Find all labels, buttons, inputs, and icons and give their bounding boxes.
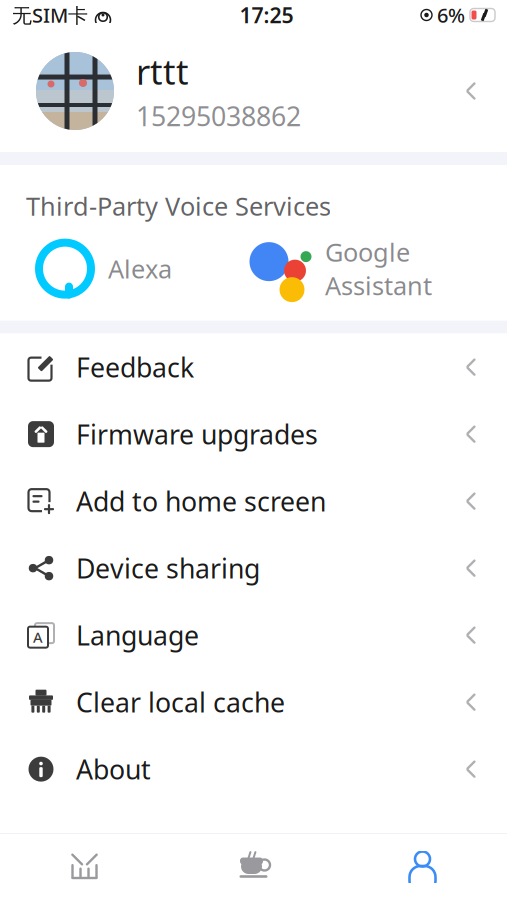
staticText: Clear local cache	[76, 684, 285, 720]
button[interactable]: Clear local cache	[0, 669, 507, 736]
staticText: rttt	[136, 48, 189, 94]
staticText: 无SIM卡	[12, 2, 88, 28]
button[interactable]: A	[0, 602, 507, 669]
button[interactable]: Discover	[169, 834, 338, 900]
staticText: 15295038862	[136, 98, 301, 134]
staticText: 6%	[437, 2, 465, 28]
button[interactable]: Profile	[338, 834, 507, 900]
button[interactable]: Alexa	[0, 231, 249, 307]
button[interactable]: Add to home screen	[0, 468, 507, 535]
button[interactable]: Google Assistant	[249, 231, 469, 307]
staticText: Add to home screen	[76, 483, 326, 519]
button[interactable]: rttt	[0, 30, 507, 152]
staticText: Language	[76, 617, 199, 653]
staticText: Google Assistant	[325, 235, 432, 302]
staticText: Alexa	[108, 252, 172, 285]
button[interactable]: Device sharing	[0, 535, 507, 602]
button[interactable]: Feedback	[0, 334, 507, 401]
button[interactable]: Home	[0, 834, 169, 900]
staticText: A	[33, 627, 43, 647]
staticText: 17:25	[239, 1, 293, 29]
staticText: Feedback	[76, 349, 194, 385]
staticText: Device sharing	[76, 550, 260, 586]
button[interactable]: Firmware upgrades	[0, 401, 507, 468]
staticText: Firmware upgrades	[76, 416, 318, 452]
staticText: About	[76, 751, 151, 787]
button[interactable]: About	[0, 736, 507, 803]
staticText: Third-Party Voice Services	[26, 189, 331, 223]
